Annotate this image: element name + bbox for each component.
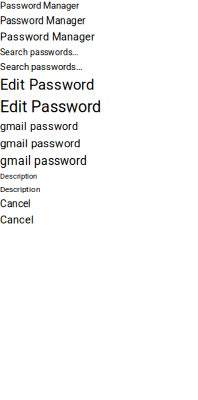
staticText: Password Manager: [0, 0, 79, 11]
staticText: Description: [0, 185, 40, 194]
staticText: Edit Password: [0, 97, 101, 116]
staticText: Cancel: [0, 198, 30, 210]
staticText: Description: [0, 172, 37, 181]
staticText: Password Manager: [0, 15, 85, 27]
staticText: Search passwords...: [0, 61, 82, 72]
staticText: gmail password: [0, 137, 80, 150]
staticText: Password Manager: [0, 31, 95, 43]
staticText: Search passwords...: [0, 47, 78, 57]
staticText: gmail password: [0, 120, 78, 133]
staticText: gmail password: [0, 154, 87, 168]
staticText: Edit Password: [0, 76, 94, 93]
staticText: Cancel: [0, 214, 34, 226]
